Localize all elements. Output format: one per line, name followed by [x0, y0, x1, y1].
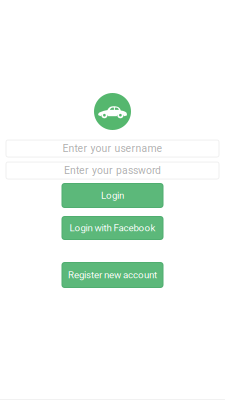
button[interactable]: Login	[61, 183, 163, 208]
staticText: Enter your password	[64, 164, 161, 177]
staticText: Enter your username	[62, 142, 162, 155]
staticText: Login	[101, 190, 124, 201]
button[interactable]: Enter your password	[6, 162, 219, 179]
button[interactable]: Login with Facebook	[61, 216, 163, 240]
button[interactable]: Enter your username	[6, 140, 219, 157]
staticText: Login with Facebook	[69, 222, 155, 234]
staticText: Register new account	[68, 269, 157, 281]
button[interactable]: Register new account	[61, 262, 163, 288]
